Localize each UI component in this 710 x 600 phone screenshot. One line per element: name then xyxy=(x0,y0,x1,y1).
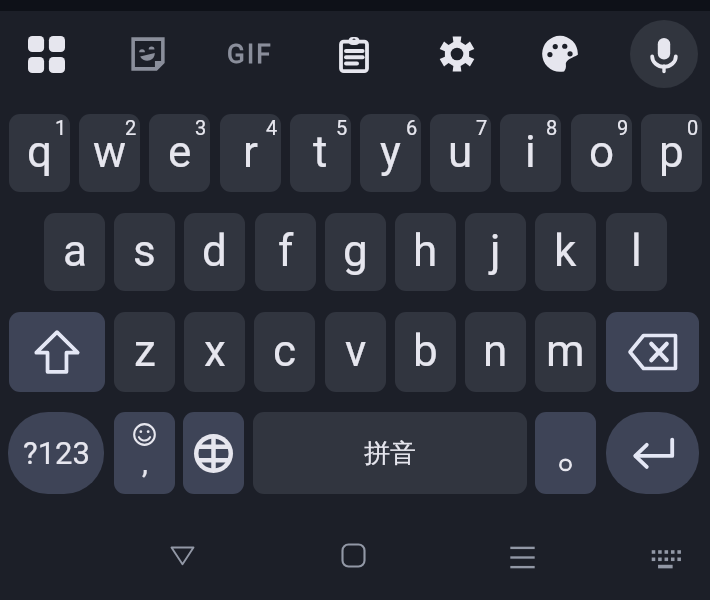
staticText: , xyxy=(142,445,148,480)
staticText: p xyxy=(659,126,684,178)
button[interactable]: x xyxy=(184,312,245,392)
staticText: n xyxy=(483,325,508,377)
button[interactable]: Recents xyxy=(492,527,552,587)
staticText: a xyxy=(63,225,87,277)
button[interactable]: Backspace xyxy=(606,312,699,392)
staticText: 5 xyxy=(336,116,348,139)
staticText: i xyxy=(525,126,536,178)
staticText: 3 xyxy=(195,116,207,139)
button[interactable]: Shift xyxy=(9,312,105,392)
staticText: f xyxy=(278,225,294,277)
button[interactable]: w xyxy=(79,114,140,192)
button[interactable]: Theme xyxy=(534,28,586,80)
staticText: o xyxy=(589,126,615,178)
button[interactable]: s xyxy=(114,213,175,291)
button[interactable]: a xyxy=(44,213,105,291)
button[interactable]: q xyxy=(9,114,70,192)
button[interactable]: Enter xyxy=(606,412,699,494)
button[interactable]: l xyxy=(606,213,667,291)
staticText: s xyxy=(133,225,156,277)
button[interactable]: r xyxy=(220,114,281,192)
button[interactable]: g xyxy=(325,213,386,291)
button[interactable]: b xyxy=(395,312,456,392)
staticText: c xyxy=(273,325,297,377)
button[interactable]: p xyxy=(641,114,702,192)
staticText: 4 xyxy=(266,116,278,139)
staticText: 2 xyxy=(125,116,137,139)
button[interactable]: o xyxy=(571,114,632,192)
button[interactable]: j xyxy=(465,213,526,291)
button[interactable]: i xyxy=(500,114,561,192)
staticText: GIF xyxy=(227,39,273,69)
staticText: h xyxy=(413,225,438,277)
staticText: t xyxy=(313,126,328,178)
staticText: r xyxy=(243,126,258,178)
staticText: 9 xyxy=(617,116,629,139)
staticText: u xyxy=(448,126,473,178)
button[interactable]: Voice input xyxy=(630,20,698,88)
button[interactable]: Clipboard xyxy=(328,28,380,80)
staticText: e xyxy=(168,126,192,178)
button[interactable]: Apps xyxy=(20,28,72,80)
button[interactable]: ?123 xyxy=(8,412,104,494)
staticText: q xyxy=(27,126,53,178)
staticText: z xyxy=(134,325,156,377)
staticText: 1 xyxy=(55,116,67,139)
staticText: 拼音 xyxy=(364,437,416,470)
staticText: 7 xyxy=(476,116,488,139)
button[interactable]: Emoji and comma xyxy=(114,412,175,494)
staticText: x xyxy=(204,325,226,377)
staticText: g xyxy=(343,225,368,277)
button[interactable]: Home xyxy=(323,525,383,585)
button[interactable]: c xyxy=(254,312,315,392)
button[interactable]: h xyxy=(395,213,456,291)
button[interactable]: k xyxy=(535,213,596,291)
button[interactable]: e xyxy=(149,114,210,192)
button[interactable]: u xyxy=(430,114,491,192)
button[interactable]: z xyxy=(114,312,175,392)
staticText: j xyxy=(490,225,501,277)
button[interactable]: v xyxy=(325,312,386,392)
button[interactable]: f xyxy=(255,213,316,291)
staticText: ?123 xyxy=(23,435,90,471)
button[interactable]: Change language xyxy=(183,412,244,494)
staticText: 8 xyxy=(546,116,558,139)
staticText: v xyxy=(345,325,367,377)
staticText: d xyxy=(202,225,227,277)
button[interactable]: Stickers xyxy=(122,28,174,80)
button[interactable]: y xyxy=(360,114,421,192)
button[interactable]: n xyxy=(465,312,526,392)
button[interactable]: Switch keyboard xyxy=(635,527,695,587)
button[interactable]: Period xyxy=(535,412,596,494)
staticText: k xyxy=(554,225,577,277)
staticText: 6 xyxy=(406,116,418,139)
staticText: y xyxy=(380,126,401,178)
button[interactable]: t xyxy=(290,114,351,192)
staticText: 0 xyxy=(687,116,699,139)
button[interactable]: 拼音 xyxy=(253,412,527,494)
button[interactable]: d xyxy=(184,213,245,291)
button[interactable]: Hide keyboard xyxy=(152,525,212,585)
staticText: w xyxy=(93,126,127,178)
staticText: b xyxy=(413,325,438,377)
button[interactable]: Settings xyxy=(431,28,483,80)
staticText: m xyxy=(546,325,585,377)
staticText: l xyxy=(631,225,642,277)
button[interactable]: m xyxy=(535,312,596,392)
button[interactable]: GIF xyxy=(216,28,284,80)
